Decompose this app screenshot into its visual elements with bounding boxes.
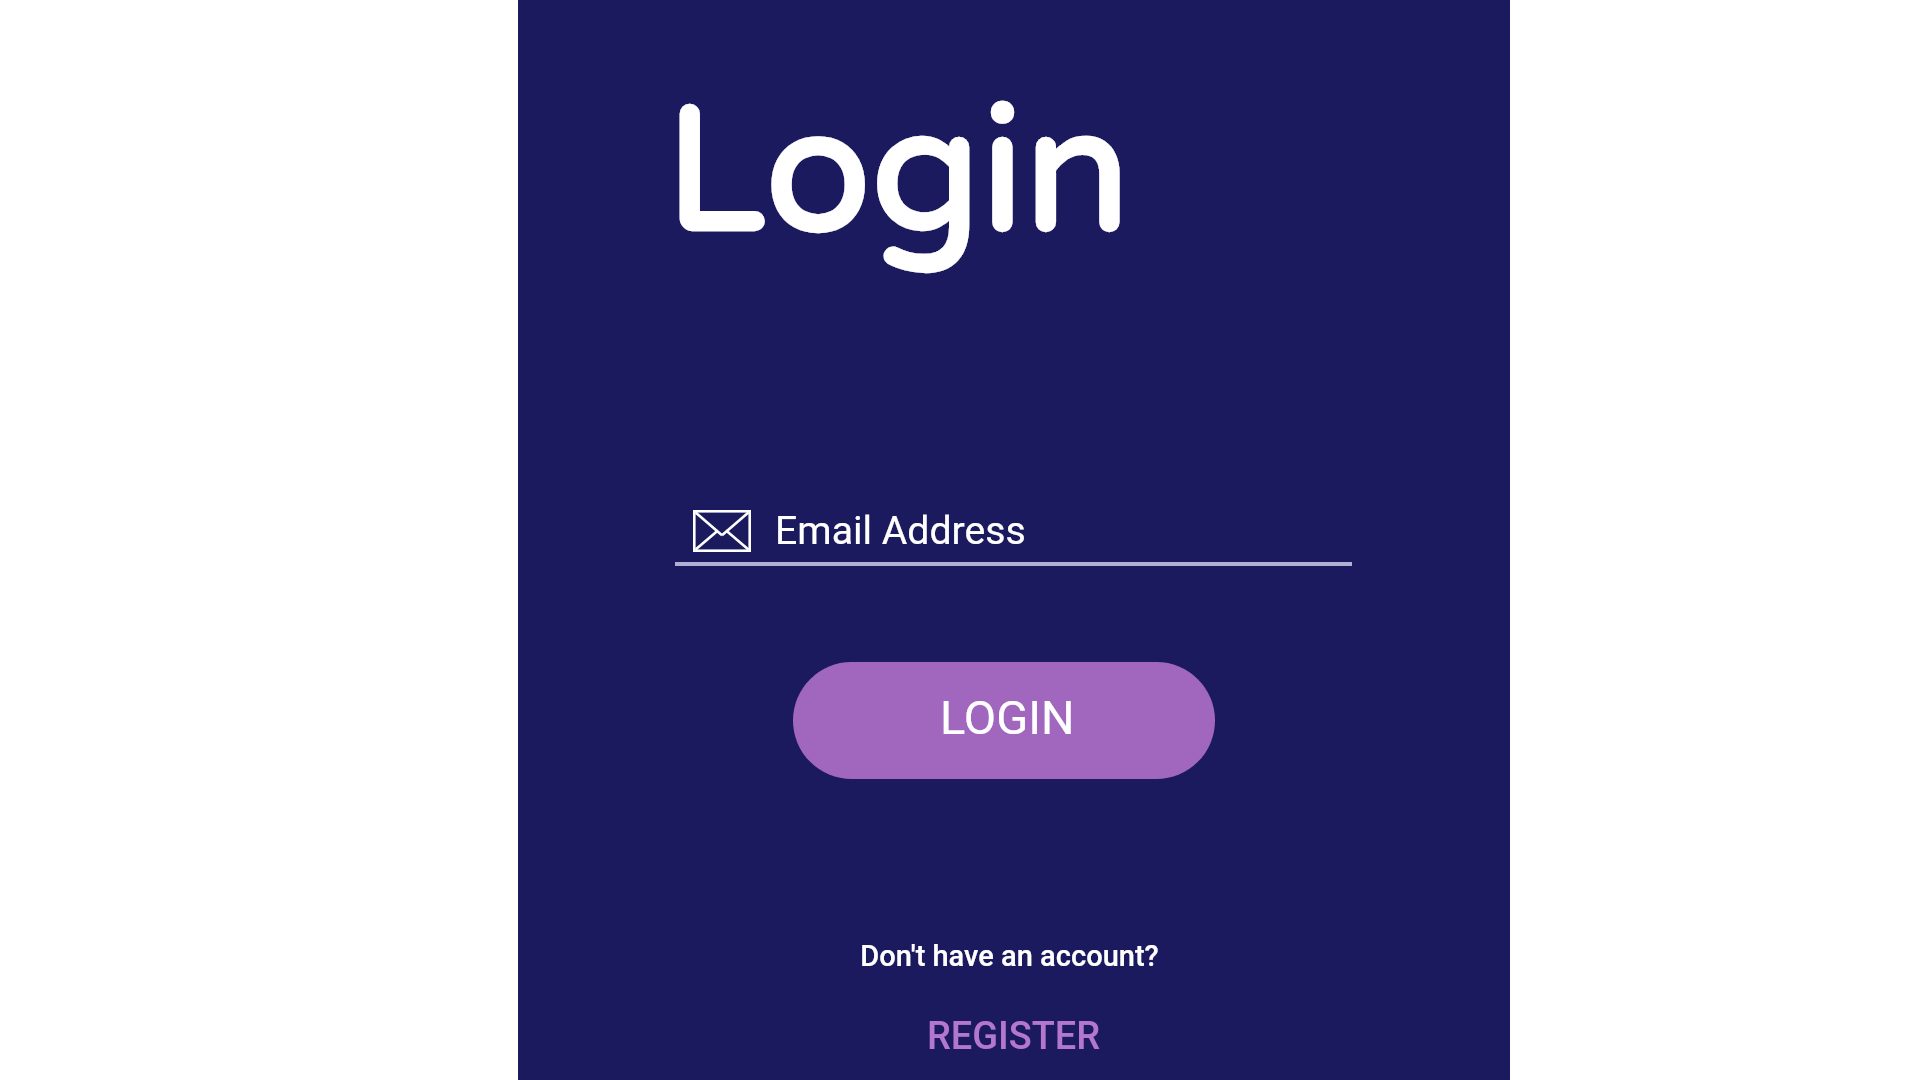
staticText: Email Address: [775, 508, 1026, 554]
staticText: Login: [665, 69, 1131, 278]
staticText: Login: [665, 69, 1131, 278]
staticText: LOGIN: [940, 690, 1075, 745]
other: Email: [693, 510, 751, 552]
button[interactable]: Email: [675, 498, 1352, 564]
staticText: Don't have an account?: [860, 939, 1159, 973]
button[interactable]: LOGIN: [793, 662, 1215, 779]
staticText: REGISTER: [927, 1014, 1101, 1059]
button[interactable]: REGISTER: [903, 1006, 1125, 1067]
